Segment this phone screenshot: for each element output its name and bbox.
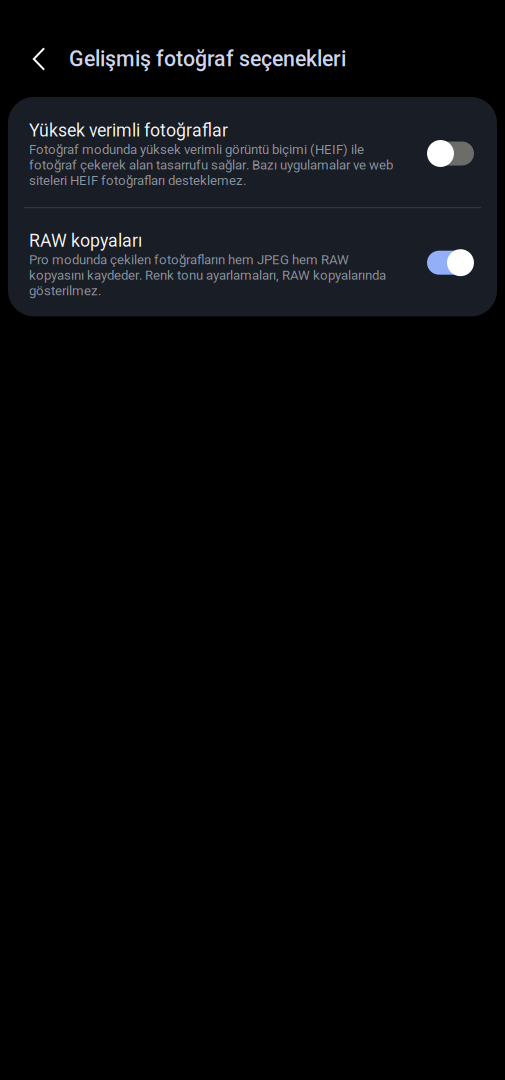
staticText: Yüksek verimli fotoğraflar <box>29 120 228 141</box>
staticText: Pro modunda çekilen fotoğrafların hem JP… <box>29 252 386 298</box>
staticText: RAW kopyaları <box>29 230 142 251</box>
staticText: Gelişmiş fotoğraf seçenekleri <box>69 46 346 71</box>
button[interactable]: RAW kopyaları <box>8 208 497 316</box>
staticText: Fotoğraf modunda yüksek verimli görüntü … <box>29 142 393 188</box>
button[interactable]: Yüksek verimli fotoğraflar <box>8 97 497 207</box>
button[interactable]: Gelişmiş fotoğraf seçenekleri <box>63 35 346 83</box>
button[interactable]: Back <box>15 35 63 83</box>
